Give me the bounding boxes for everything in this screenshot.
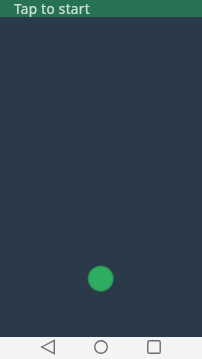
staticText: Tap to start [14,0,90,17]
button[interactable]: Tap the dot [0,0,202,359]
button[interactable]: Tap to start [0,0,202,17]
button[interactable]: Home [90,336,112,358]
button[interactable]: Recent apps [143,336,165,358]
button[interactable]: Back [37,336,59,358]
